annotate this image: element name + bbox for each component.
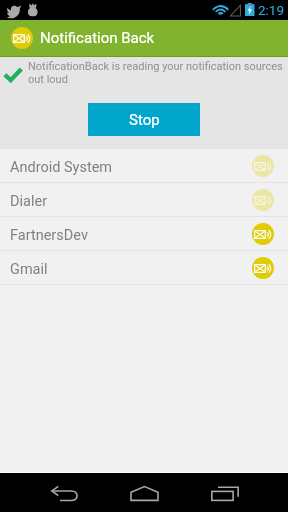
staticText: Stop: [129, 111, 160, 129]
staticText: 2:19: [258, 2, 285, 18]
button[interactable]: FartnersDev: [0, 217, 288, 250]
button[interactable]: Stop: [88, 103, 200, 136]
button[interactable]: Android System: [0, 149, 288, 182]
button[interactable]: Gmail: [0, 251, 288, 284]
button[interactable]: Back: [25, 473, 105, 512]
staticText: NotificationBack is reading your notific…: [28, 60, 284, 86]
staticText: FartnersDev: [10, 227, 88, 244]
staticText: Dialer: [10, 193, 48, 210]
staticText: Gmail: [10, 261, 48, 278]
staticText: Android System: [10, 159, 113, 176]
staticText: Notification Back: [40, 29, 155, 47]
button[interactable]: Home: [104, 473, 184, 512]
button[interactable]: Recent apps: [185, 473, 265, 512]
button[interactable]: Dialer: [0, 183, 288, 216]
